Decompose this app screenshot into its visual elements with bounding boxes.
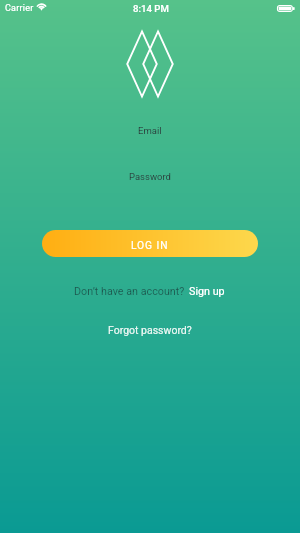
button[interactable]: Forgot password?	[106, 322, 194, 338]
staticText: Password	[129, 171, 171, 182]
staticText: Forgot password?	[108, 324, 192, 336]
staticText: Sign up	[189, 285, 225, 298]
other: Wi-Fi signal	[36, 2, 47, 10]
staticText: Email	[138, 125, 162, 136]
staticText: LOG IN	[131, 239, 169, 251]
staticText: Carrier	[5, 3, 34, 14]
button[interactable]: Sign up	[188, 283, 226, 300]
button[interactable]: Email	[0, 121, 300, 139]
other: Battery	[277, 5, 295, 12]
button[interactable]: Password	[0, 167, 300, 185]
staticText: Don’t have an account?	[74, 285, 185, 298]
button[interactable]: LOG IN	[42, 230, 258, 257]
staticText: 8:14 PM	[133, 3, 169, 14]
